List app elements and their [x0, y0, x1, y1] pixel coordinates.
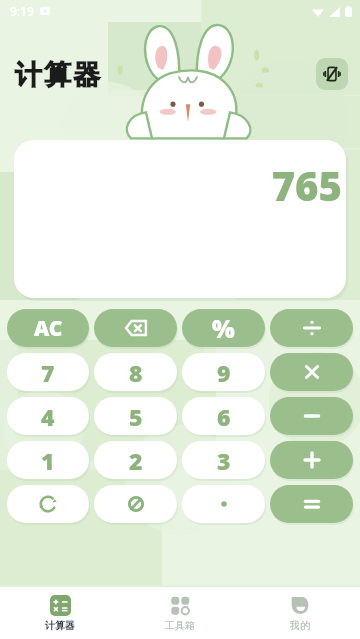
staticText: 5 — [129, 401, 143, 432]
staticText: AC — [34, 314, 63, 343]
staticText: 我的 — [290, 619, 310, 632]
staticText: 7 — [41, 357, 55, 388]
staticText: 计算器 — [14, 58, 101, 92]
button[interactable]: Zero — [94, 485, 177, 523]
staticText: 4 — [41, 401, 55, 432]
button[interactable]: AC — [7, 309, 89, 347]
button[interactable]: 7 — [7, 353, 89, 391]
button[interactable]: 我的 — [240, 587, 360, 639]
button[interactable]: 5 — [94, 397, 177, 435]
button[interactable]: 6 — [182, 397, 265, 435]
staticText: 6 — [217, 401, 231, 432]
staticText: 3 — [217, 445, 231, 476]
staticText: 8 — [129, 357, 143, 388]
button[interactable]: 2 — [94, 441, 177, 479]
button[interactable]: Equals — [270, 485, 353, 523]
button[interactable]: Divide — [270, 309, 353, 347]
staticText: 9 — [217, 357, 231, 388]
button[interactable]: 1 — [7, 441, 89, 479]
button[interactable]: Convert — [7, 485, 89, 523]
button[interactable]: 9 — [182, 353, 265, 391]
button[interactable]: Backspace — [94, 309, 177, 347]
staticText: % — [212, 312, 235, 345]
button[interactable]: 计算器 — [0, 587, 120, 639]
button[interactable]: 8 — [94, 353, 177, 391]
staticText: 765 — [271, 158, 342, 212]
button[interactable]: Vibration off — [316, 58, 348, 90]
button[interactable]: Multiply — [270, 353, 353, 391]
staticText: 2 — [129, 445, 143, 476]
button[interactable]: 工具箱 — [120, 587, 240, 639]
button[interactable]: Decimal point — [182, 485, 265, 523]
staticText: 工具箱 — [165, 619, 195, 632]
staticText: 计算器 — [45, 619, 75, 632]
staticText: 1 — [41, 445, 55, 476]
button[interactable]: 4 — [7, 397, 89, 435]
button[interactable]: Plus — [270, 441, 353, 479]
button[interactable]: Minus — [270, 397, 353, 435]
staticText: 9:19 — [10, 3, 34, 19]
button[interactable]: 3 — [182, 441, 265, 479]
button[interactable]: % — [182, 309, 265, 347]
